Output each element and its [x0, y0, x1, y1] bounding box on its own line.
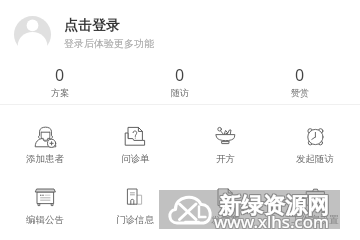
staticText: 点击登录: [64, 17, 120, 35]
staticText: www.xlhs.com: [213, 209, 328, 232]
staticText: 新绿资源网: [219, 193, 329, 221]
button[interactable]: 0: [120, 64, 240, 102]
staticText: www.xlhs.com: [215, 209, 330, 232]
staticText: 编辑公告: [26, 214, 64, 226]
staticText: 新绿资源网: [220, 193, 330, 221]
staticText: 新绿资源网: [220, 192, 330, 220]
staticText: 新绿资源网: [220, 191, 330, 219]
staticText: 新绿资源网: [218, 192, 328, 220]
button[interactable]: 编辑公告: [0, 186, 90, 226]
staticText: 登录后体验更多功能: [64, 37, 154, 50]
staticText: www.xlhs.com: [215, 211, 330, 234]
staticText: 新绿资源网: [219, 191, 329, 219]
button[interactable]: 门诊信息: [90, 186, 180, 226]
staticText: www.xlhs.com: [214, 211, 329, 234]
button[interactable]: 0: [240, 64, 360, 102]
staticText: 发起随访: [296, 153, 334, 165]
button[interactable]: 0: [0, 64, 120, 102]
staticText: www.xlhs.com: [213, 210, 328, 233]
staticText: 新绿资源网: [218, 191, 328, 219]
staticText: www.xlhs.com: [214, 210, 329, 233]
staticText: 0: [175, 64, 185, 86]
button[interactable]: 问诊单: [90, 125, 180, 165]
staticText: 赞赏: [291, 87, 309, 98]
staticText: 0: [55, 64, 65, 86]
staticText: 新绿资源网: [219, 192, 329, 220]
button[interactable]: 添加患者: [0, 125, 90, 165]
staticText: 开方: [216, 153, 235, 165]
staticText: 发文章: [211, 214, 240, 226]
staticText: 门诊信息: [116, 214, 154, 226]
staticText: www.xlhs.com: [213, 211, 328, 234]
button[interactable]: 发起随访: [270, 125, 360, 165]
button[interactable]: 点击登录: [0, 12, 360, 58]
staticText: 随访: [171, 87, 189, 98]
button[interactable]: 开方: [180, 125, 270, 165]
staticText: 问诊单: [121, 153, 150, 165]
staticText: www.xlhs.com: [215, 210, 330, 233]
staticText: 0: [295, 64, 305, 86]
staticText: www.xlhs.com: [214, 209, 329, 232]
staticText: 方案: [51, 87, 69, 98]
staticText: 新绿资源网: [218, 193, 328, 221]
button[interactable]: 发文章: [180, 186, 270, 226]
staticText: 添加患者: [26, 153, 64, 165]
button[interactable]: 工作室设置: [270, 186, 360, 226]
staticText: 工作室设置: [291, 214, 339, 226]
